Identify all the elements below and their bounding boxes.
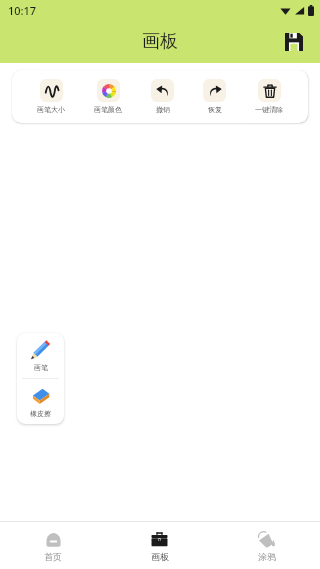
button[interactable]: 恢复 [199, 77, 230, 116]
staticText: 恢复 [208, 105, 222, 114]
staticText: 涂鸦 [258, 551, 276, 562]
staticText: 一键清除 [255, 105, 283, 114]
button[interactable]: 画笔颜色 [90, 77, 126, 116]
staticText: 画板 [151, 551, 169, 562]
staticText: 橡皮擦 [30, 409, 51, 418]
staticText: 撤销 [156, 105, 170, 114]
button[interactable]: 一键清除 [251, 77, 287, 116]
button[interactable]: 橡皮擦 [17, 379, 64, 424]
button[interactable]: 撤销 [147, 77, 178, 116]
button[interactable]: 画笔 [17, 333, 64, 378]
staticText: 画笔 [34, 363, 48, 372]
staticText: 10:17 [8, 3, 37, 18]
staticText: 画笔大小 [37, 105, 65, 114]
staticText: 画板 [142, 30, 178, 53]
button[interactable]: Save [278, 26, 310, 58]
button[interactable]: 画笔大小 [33, 77, 69, 116]
button[interactable]: 涂鸦 [213, 522, 320, 569]
staticText: 画笔颜色 [94, 105, 122, 114]
staticText: 首页 [44, 551, 62, 562]
button[interactable]: 首页 [0, 522, 106, 569]
button[interactable]: 画板 [106, 522, 213, 569]
